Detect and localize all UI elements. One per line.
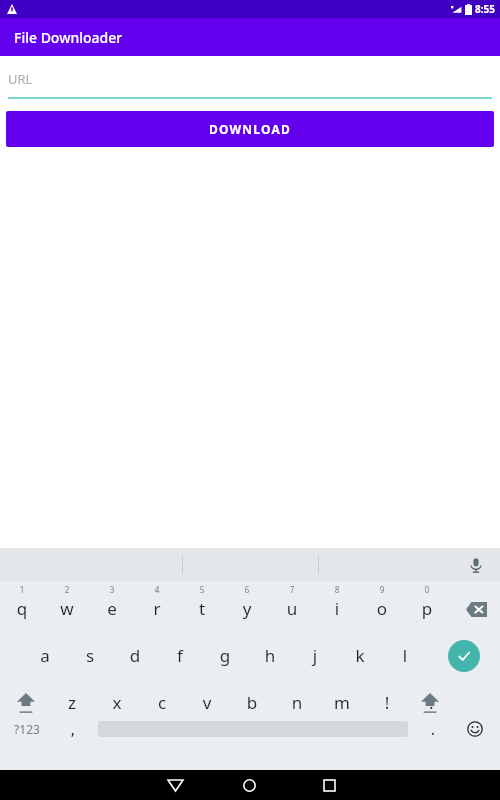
button[interactable]: l <box>394 644 416 667</box>
button[interactable]: p <box>416 597 438 620</box>
button[interactable]: ?123 <box>10 721 44 737</box>
button[interactable]: k <box>349 644 371 667</box>
button[interactable]: j <box>304 644 326 667</box>
button[interactable]: x <box>106 691 128 714</box>
button[interactable]: , <box>64 718 82 740</box>
staticText: 8:55 <box>475 2 495 16</box>
button[interactable]: o <box>371 597 393 620</box>
button[interactable]: e <box>101 597 123 620</box>
button[interactable]: d <box>124 644 146 667</box>
button[interactable]: Emoji <box>463 717 487 741</box>
staticText: 9 <box>374 584 390 595</box>
button[interactable]: f <box>169 644 191 667</box>
staticText: 8 <box>329 584 345 595</box>
button[interactable]: Voice input <box>464 553 488 577</box>
button[interactable]: g <box>214 644 236 667</box>
button[interactable]: s <box>79 644 101 667</box>
button[interactable]: z <box>61 691 83 714</box>
button[interactable]: URL <box>8 70 492 99</box>
button[interactable]: Home <box>238 770 500 800</box>
button[interactable]: r <box>146 597 168 620</box>
button[interactable]: u <box>281 597 303 620</box>
staticText: 1 <box>14 584 30 595</box>
button[interactable]: q <box>11 597 33 620</box>
button[interactable]: Back <box>163 770 500 800</box>
staticText: 7 <box>284 584 300 595</box>
button[interactable]: n <box>286 691 308 714</box>
button[interactable]: y <box>236 597 258 620</box>
button[interactable]: Shift <box>416 689 444 717</box>
button[interactable]: h <box>259 644 281 667</box>
button[interactable]: m <box>331 691 353 714</box>
staticText: URL <box>8 70 33 88</box>
button[interactable]: w <box>56 597 78 620</box>
staticText: 2 <box>59 584 75 595</box>
button[interactable]: v <box>196 691 218 714</box>
button[interactable]: i <box>326 597 348 620</box>
staticText: DOWNLOAD <box>209 121 291 137</box>
button[interactable]: b <box>241 691 263 714</box>
button[interactable]: Backspace <box>462 595 490 623</box>
button[interactable]: c <box>151 691 173 714</box>
staticText: 3 <box>104 584 120 595</box>
button[interactable]: . <box>424 718 442 740</box>
staticText: 4 <box>149 584 165 595</box>
staticText: 6 <box>239 584 255 595</box>
staticText: 5 <box>194 584 210 595</box>
button[interactable]: DOWNLOAD <box>6 111 494 147</box>
button[interactable]: Recents <box>318 770 500 800</box>
button[interactable]: Enter <box>448 640 480 672</box>
button[interactable]: Shift <box>12 689 40 717</box>
staticText: 0 <box>419 584 435 595</box>
staticText: File Downloader <box>14 28 123 47</box>
button[interactable]: ! <box>376 691 398 714</box>
button[interactable]: t <box>191 597 213 620</box>
button[interactable]: ? <box>421 691 443 714</box>
button[interactable]: a <box>34 644 56 667</box>
